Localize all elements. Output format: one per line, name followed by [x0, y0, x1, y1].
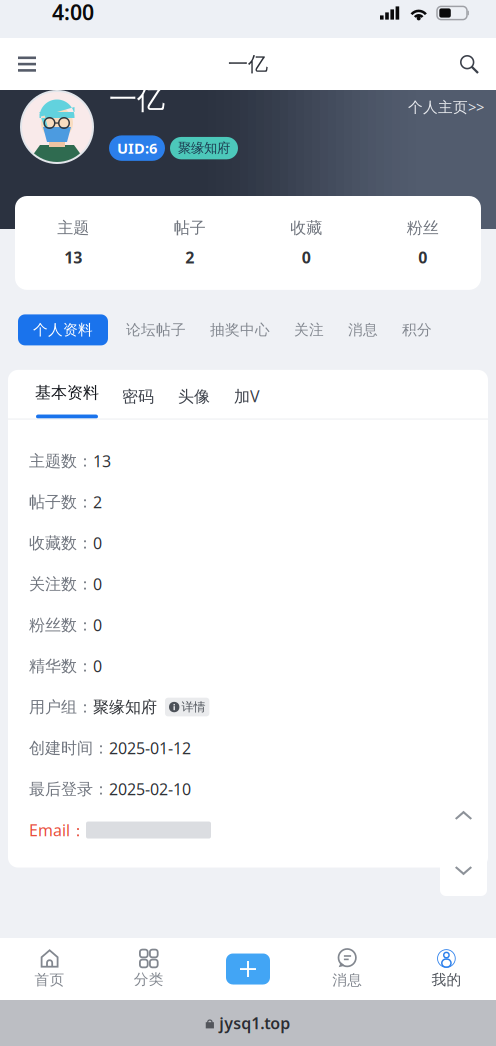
staticText: 聚缘知府	[178, 140, 230, 156]
staticText: 基本资料	[35, 383, 99, 403]
button[interactable]: 消息	[336, 314, 390, 346]
staticText: 详情	[181, 700, 205, 714]
button[interactable]: Search	[442, 38, 496, 90]
staticText: jysq1.top	[219, 1012, 290, 1034]
button[interactable]: 关注	[282, 314, 336, 346]
button[interactable]: 主题	[15, 218, 131, 268]
staticText: 帖子数：	[29, 492, 93, 512]
staticText: 抽奖中心	[210, 321, 270, 339]
staticText: 精华数：	[29, 656, 93, 676]
staticText: 关注数：	[29, 574, 93, 594]
button[interactable]: 详情	[157, 698, 209, 716]
button[interactable]: Scroll down	[440, 849, 487, 896]
staticText: 收藏数：	[29, 533, 93, 553]
staticText: 2	[93, 491, 102, 513]
staticText: 个人资料	[33, 321, 93, 339]
staticText: 密码	[122, 387, 154, 407]
staticText: 首页	[35, 971, 65, 989]
staticText: 关注	[294, 321, 324, 339]
button[interactable]: 加V	[222, 385, 272, 418]
button[interactable]: 头像	[166, 387, 222, 419]
button[interactable]: 个人资料	[18, 314, 108, 345]
staticText: 粉丝	[407, 218, 439, 238]
staticText: 0	[93, 573, 102, 595]
staticText: 主题数：	[29, 451, 93, 471]
staticText: 主题	[57, 218, 89, 238]
staticText: 2025-02-10	[109, 778, 191, 800]
staticText: 0	[418, 247, 427, 268]
staticText: 我的	[431, 971, 461, 989]
staticText: 头像	[178, 387, 210, 407]
staticText: 用户组：	[29, 697, 93, 717]
staticText: 加V	[234, 385, 260, 406]
staticText: 0	[302, 247, 311, 268]
staticText: UID:6	[117, 138, 157, 158]
button[interactable]: 积分	[390, 314, 444, 346]
button[interactable]: Menu	[0, 38, 54, 90]
button[interactable]: 帖子	[131, 218, 248, 268]
staticText: 收藏	[290, 218, 322, 238]
staticText: 最后登录：	[29, 779, 109, 799]
button[interactable]: 个人主页>>	[408, 97, 496, 116]
staticText: 论坛帖子	[126, 321, 186, 339]
button[interactable]: 粉丝	[364, 218, 481, 268]
staticText: 帖子	[174, 218, 206, 238]
staticText: 积分	[402, 321, 432, 339]
staticText: 消息	[348, 321, 378, 339]
staticText: 个人主页>>	[408, 97, 484, 116]
staticText: 13	[64, 247, 82, 268]
staticText: 13	[93, 450, 111, 472]
button[interactable]: Scroll up	[440, 792, 487, 839]
button[interactable]: 论坛帖子	[114, 314, 198, 346]
staticText: 2025-01-12	[109, 737, 191, 759]
staticText: 0	[93, 532, 102, 554]
button[interactable]: Add	[198, 938, 298, 1000]
button[interactable]: 抽奖中心	[198, 314, 282, 346]
button[interactable]: 首页	[0, 938, 99, 1000]
button[interactable]: 基本资料	[8, 383, 110, 419]
staticText: 一亿	[109, 82, 165, 116]
staticText: 消息	[332, 971, 362, 989]
staticText: 粉丝数：	[29, 615, 93, 635]
button[interactable]: 我的	[397, 938, 496, 1000]
staticText: 2	[185, 247, 194, 268]
staticText: 4:00	[52, 0, 94, 26]
staticText: 聚缘知府	[93, 697, 157, 717]
button[interactable]: 消息	[298, 938, 397, 1000]
staticText: 分类	[134, 970, 164, 988]
staticText: Email：	[29, 819, 86, 841]
staticText: 0	[93, 614, 102, 636]
button[interactable]: 收藏	[248, 218, 364, 268]
button[interactable]: 密码	[110, 387, 166, 419]
staticText: 0	[93, 655, 102, 677]
staticText: 一亿	[228, 52, 268, 76]
staticText: 创建时间：	[29, 738, 109, 758]
button[interactable]: 分类	[99, 938, 198, 1000]
